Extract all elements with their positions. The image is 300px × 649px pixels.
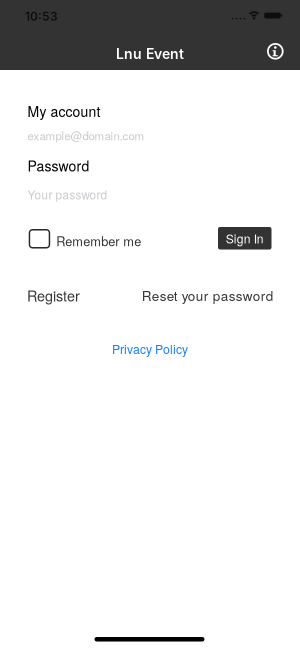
staticText: Your password	[27, 186, 107, 203]
staticText: Register	[27, 285, 80, 306]
staticText: Password	[27, 155, 89, 175]
staticText: Reset your password	[142, 285, 274, 305]
staticText: My account	[27, 101, 100, 121]
staticText: Privacy Policy	[112, 340, 188, 358]
staticText: Sign In	[226, 230, 264, 247]
staticText: example@domain.com	[27, 127, 144, 143]
staticText: Lnu Event	[116, 45, 184, 62]
staticText: Remember me	[56, 231, 141, 250]
staticText: 10:53	[25, 9, 58, 23]
